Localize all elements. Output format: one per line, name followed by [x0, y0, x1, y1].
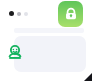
button[interactable]	[14, 36, 86, 72]
button[interactable]: Profile	[8, 45, 22, 59]
button[interactable]: Secure lock	[58, 1, 83, 27]
button[interactable]	[2, 2, 93, 82]
